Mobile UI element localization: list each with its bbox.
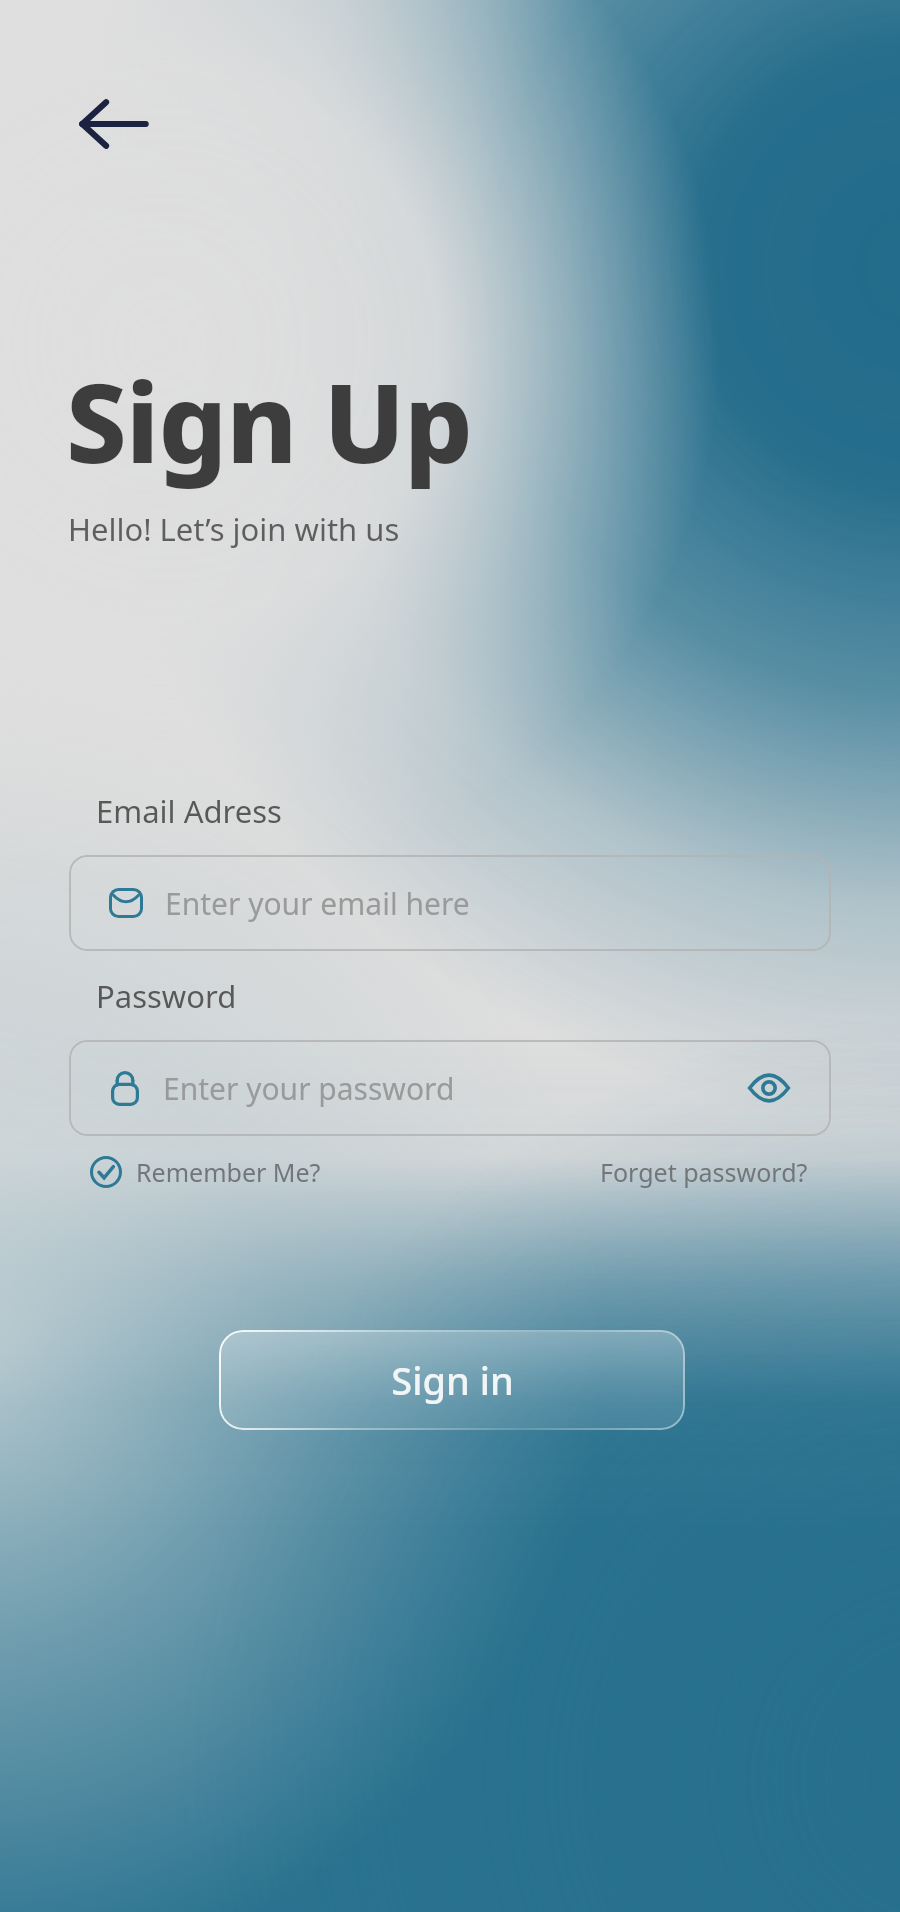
button[interactable]: Forget password?	[596, 1149, 812, 1195]
button[interactable]: Remember Me?	[88, 1151, 323, 1193]
button[interactable]: Enter your password	[69, 1040, 831, 1136]
staticText: Sign in	[391, 1354, 514, 1406]
button[interactable]: Back	[62, 72, 166, 176]
staticText: Remember Me?	[136, 1155, 321, 1189]
button[interactable]: Enter your email here	[69, 855, 831, 951]
staticText: Password	[96, 975, 237, 1017]
staticText: Forget password?	[600, 1155, 808, 1189]
staticText: Email Adress	[96, 790, 282, 832]
staticText: Sign Up	[66, 348, 472, 495]
staticText: Enter your password	[163, 1068, 455, 1109]
staticText: Hello! Let’s join with us	[68, 508, 400, 550]
button[interactable]: Sign in	[219, 1330, 685, 1430]
staticText: Enter your email here	[165, 883, 470, 924]
button[interactable]: Show password	[733, 1052, 805, 1124]
